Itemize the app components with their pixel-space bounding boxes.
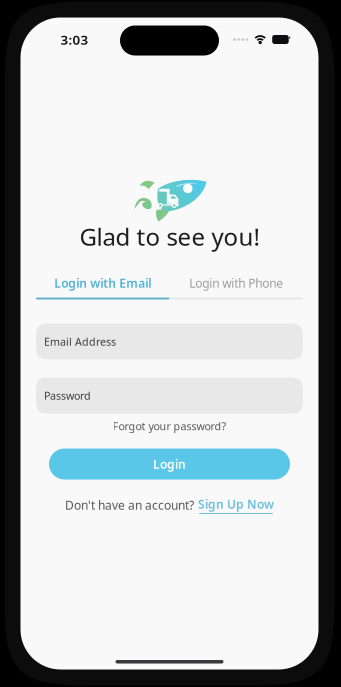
staticText: Sign Up Now: [198, 496, 274, 512]
button[interactable]: Login with Email: [36, 276, 169, 299]
button[interactable]: Login: [49, 448, 290, 479]
button[interactable]: Password: [36, 377, 303, 413]
staticText: Forgot your password?: [112, 419, 226, 433]
staticText: 3:03: [60, 31, 88, 48]
button[interactable]: Forgot your password?: [112, 419, 226, 432]
staticText: Email Address: [44, 334, 116, 349]
staticText: Don't have an account?: [65, 497, 194, 513]
button[interactable]: Email Address: [36, 323, 303, 359]
staticText: Login: [153, 456, 186, 472]
staticText: Glad to see you!: [79, 221, 259, 252]
staticText: Login with Phone: [189, 275, 283, 291]
button[interactable]: Login with Phone: [169, 276, 303, 299]
staticText: Password: [44, 388, 91, 403]
button[interactable]: Sign Up Now: [198, 496, 274, 514]
staticText: Login with Email: [54, 275, 151, 291]
